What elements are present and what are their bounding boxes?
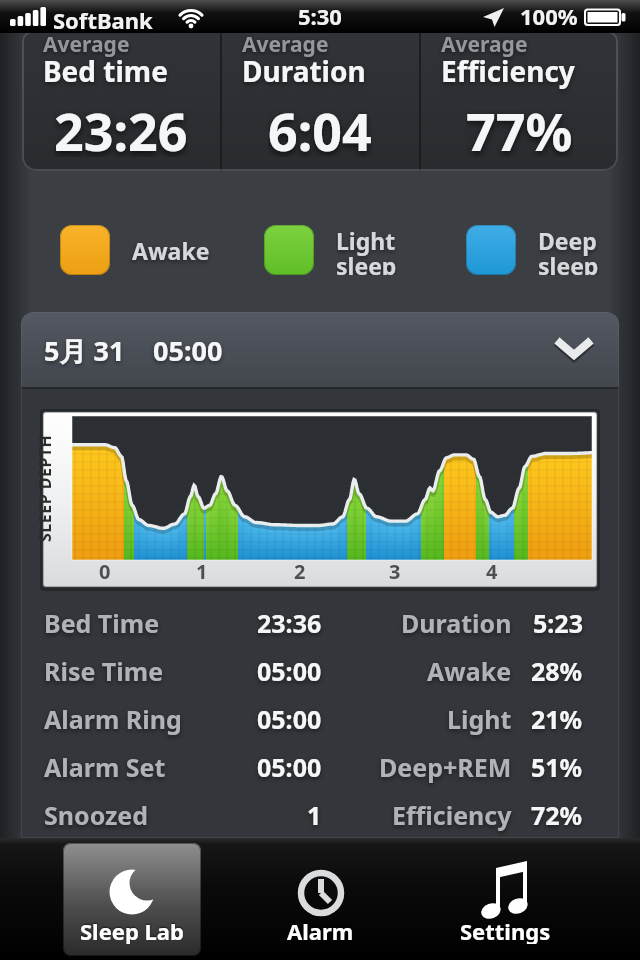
button[interactable]: Settings <box>435 838 575 960</box>
staticText: Duration <box>401 606 512 640</box>
staticText: Sleep Lab <box>80 916 184 944</box>
staticText: Duration <box>242 52 366 90</box>
staticText: 100% <box>520 1 578 31</box>
staticText: Alarm Ring <box>44 702 182 736</box>
staticText: Light sleep <box>336 225 397 275</box>
button[interactable]: 5月 31 <box>21 312 619 389</box>
staticText: 4 <box>486 558 498 584</box>
staticText: Average <box>43 31 130 59</box>
staticText: 5月 31 <box>44 332 125 369</box>
staticText: 51% <box>531 750 583 784</box>
staticText: SoftBank <box>53 5 153 35</box>
staticText: Alarm Set <box>44 750 166 784</box>
staticText: 77% <box>466 95 573 157</box>
staticText: 23:26 <box>54 95 188 157</box>
staticText: 28% <box>531 654 583 688</box>
button[interactable] <box>63 843 201 956</box>
staticText: SLEEP DEPTH <box>34 434 56 542</box>
staticText: 1 <box>196 558 208 584</box>
staticText: Average <box>441 31 528 59</box>
staticText: 05:00 <box>153 332 223 369</box>
button[interactable]: Alarm <box>250 838 390 960</box>
staticText: 05:00 <box>257 750 322 784</box>
staticText: Efficiency <box>441 52 575 90</box>
staticText: 6:04 <box>268 95 372 157</box>
staticText: 21% <box>531 702 583 736</box>
staticText: 05:00 <box>257 654 322 688</box>
staticText: 23:36 <box>257 606 322 640</box>
staticText: 72% <box>531 798 583 832</box>
staticText: 0 <box>99 558 111 584</box>
staticText: Light <box>447 702 512 736</box>
staticText: 5:30 <box>298 1 342 31</box>
staticText: Snoozed <box>44 798 149 832</box>
staticText: 05:00 <box>257 702 322 736</box>
staticText: Average <box>242 31 329 59</box>
staticText: Bed time <box>43 52 168 90</box>
staticText: Deep sleep <box>538 225 599 275</box>
staticText: 3 <box>389 558 401 584</box>
staticText: Settings <box>460 916 551 944</box>
staticText: Bed Time <box>44 606 160 640</box>
staticText: Awake <box>132 235 210 266</box>
staticText: 1 <box>307 798 322 832</box>
staticText: Rise Time <box>44 654 164 688</box>
staticText: Deep+REM <box>379 750 512 784</box>
staticText: Efficiency <box>392 798 512 832</box>
staticText: 5:23 <box>533 606 583 640</box>
staticText: 2 <box>294 558 306 584</box>
staticText: Alarm <box>287 916 354 944</box>
staticText: Awake <box>427 654 512 688</box>
